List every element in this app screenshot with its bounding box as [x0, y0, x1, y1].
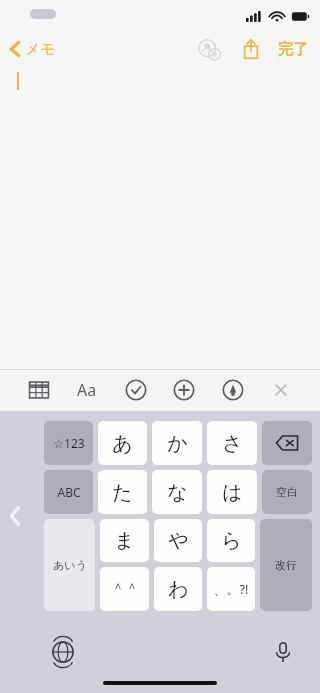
- button[interactable]: Dictate: [268, 637, 298, 667]
- button[interactable]: Add people: [194, 34, 224, 64]
- button[interactable]: 改行: [260, 519, 312, 611]
- staticText: は: [222, 480, 243, 505]
- button[interactable]: ☆123: [44, 421, 93, 465]
- button[interactable]: Checklist: [123, 377, 149, 403]
- button[interactable]: Format text: [74, 377, 100, 403]
- button[interactable]: Close keyboard: [268, 377, 294, 403]
- staticText: 完了: [278, 40, 308, 59]
- staticText: な: [167, 480, 188, 505]
- staticText: ☆123: [53, 435, 85, 451]
- button[interactable]: ら: [207, 519, 255, 562]
- staticText: や: [168, 528, 189, 553]
- button[interactable]: 完了: [276, 40, 310, 59]
- button[interactable]: や: [154, 519, 202, 562]
- staticText: わ: [168, 577, 189, 602]
- staticText: あいう: [53, 558, 87, 572]
- button[interactable]: Delete: [262, 421, 312, 465]
- button[interactable]: Change keyboard: [48, 637, 78, 667]
- button[interactable]: Table: [26, 377, 52, 403]
- button[interactable]: メモ: [8, 39, 56, 59]
- staticText: ら: [221, 528, 242, 553]
- button[interactable]: か: [152, 421, 202, 465]
- staticText: さ: [222, 431, 243, 456]
- button[interactable]: さ: [207, 421, 257, 465]
- button[interactable]: あいう: [44, 519, 95, 611]
- button[interactable]: な: [152, 470, 202, 514]
- button[interactable]: た: [98, 470, 147, 514]
- button[interactable]: は: [207, 470, 257, 514]
- staticText: た: [112, 480, 133, 505]
- button[interactable]: あ: [98, 421, 147, 465]
- button[interactable]: Add attachment: [171, 377, 197, 403]
- staticText: 、。?!: [213, 580, 249, 598]
- staticText: か: [167, 431, 188, 456]
- staticText: 空白: [276, 485, 298, 499]
- button[interactable]: ABC: [44, 470, 93, 514]
- button[interactable]: わ: [154, 567, 202, 611]
- button[interactable]: 空白: [262, 470, 312, 514]
- staticText: 改行: [275, 558, 297, 572]
- button[interactable]: ＾＾: [100, 567, 149, 611]
- button[interactable]: Markup: [220, 377, 246, 403]
- staticText: ＾＾: [111, 580, 139, 598]
- button[interactable]: Share: [236, 34, 266, 64]
- button[interactable]: ま: [100, 519, 149, 562]
- button[interactable]: 、。?!: [207, 567, 255, 611]
- staticText: あ: [112, 431, 133, 456]
- staticText: ま: [114, 528, 135, 553]
- staticText: ABC: [57, 484, 81, 500]
- staticText: メモ: [25, 40, 56, 59]
- staticText: Aa: [77, 379, 97, 401]
